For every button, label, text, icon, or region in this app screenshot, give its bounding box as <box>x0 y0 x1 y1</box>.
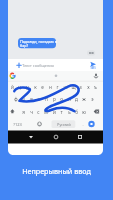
button[interactable]: ч <box>27 106 35 118</box>
button[interactable]: Attach <box>14 60 24 71</box>
staticText: и <box>53 109 56 115</box>
staticText: ц <box>18 84 21 90</box>
button[interactable]: Google search <box>8 71 18 81</box>
button[interactable]: ы <box>19 93 27 105</box>
staticText: з <box>79 84 82 90</box>
staticText: щ <box>71 84 76 90</box>
button[interactable]: б <box>72 106 80 118</box>
button[interactable]: ъ <box>91 81 99 93</box>
button[interactable]: щ <box>69 81 77 93</box>
staticText: м <box>44 109 48 115</box>
staticText: ъ <box>94 84 97 90</box>
staticText: Русский <box>57 122 71 127</box>
staticText: л <box>68 96 71 102</box>
button[interactable]: я <box>19 106 27 118</box>
button[interactable]: п <box>42 93 50 105</box>
button[interactable]: Enter <box>88 120 96 128</box>
staticText: х <box>87 84 90 90</box>
button[interactable]: д <box>72 93 80 105</box>
staticText: т <box>60 109 63 115</box>
button[interactable]: Home <box>48 131 64 144</box>
button[interactable]: х <box>84 81 92 93</box>
staticText: ы <box>21 96 25 102</box>
button[interactable]: н <box>46 81 54 93</box>
staticText: г <box>56 84 59 90</box>
staticText: е <box>41 84 44 90</box>
button[interactable]: ю <box>80 106 88 118</box>
button[interactable]: Shift <box>8 106 18 118</box>
button[interactable]: ?123 <box>10 118 24 130</box>
staticText: ю <box>82 109 86 115</box>
staticText: п <box>45 96 48 102</box>
staticText: д <box>75 96 78 102</box>
button[interactable]: Message bubble <box>18 38 56 48</box>
button[interactable]: ц <box>15 81 23 93</box>
button[interactable]: Emoji <box>34 118 45 130</box>
staticText: й <box>11 84 14 90</box>
button[interactable]: е <box>38 81 46 93</box>
staticText: у <box>26 84 29 90</box>
button[interactable]: Suggestion <box>50 71 62 81</box>
staticText: ь <box>68 109 71 115</box>
staticText: с <box>37 109 40 115</box>
staticText: р <box>53 96 56 102</box>
staticText: я <box>22 109 25 115</box>
button[interactable]: й <box>8 81 16 93</box>
staticText: ф <box>14 96 18 102</box>
button[interactable]: ь <box>65 106 73 118</box>
button[interactable]: Русский <box>52 120 76 128</box>
staticText: Непрерывный ввод <box>22 166 91 176</box>
staticText: а <box>37 96 40 102</box>
button[interactable]: в <box>27 93 35 105</box>
staticText: э <box>91 96 94 102</box>
button[interactable]: к <box>31 81 39 93</box>
staticText: ж <box>82 96 86 102</box>
staticText: к <box>34 84 37 90</box>
staticText: Текст сообщения <box>22 63 54 68</box>
button[interactable]: с <box>34 106 42 118</box>
staticText: . <box>82 122 84 127</box>
button[interactable]: и <box>50 106 58 118</box>
button[interactable]: Voice input <box>91 71 101 81</box>
button[interactable]: Send <box>87 59 99 71</box>
staticText: н <box>49 84 52 90</box>
button[interactable]: э <box>88 93 96 105</box>
staticText: ч <box>30 109 33 115</box>
button[interactable]: т <box>57 106 65 118</box>
staticText: Подожди, погадаю в бар? <box>20 39 57 48</box>
button[interactable]: Back <box>23 131 39 144</box>
button[interactable]: з <box>76 81 84 93</box>
button[interactable]: м <box>42 106 50 118</box>
staticText: ш <box>63 84 68 90</box>
staticText: о <box>60 96 63 102</box>
button[interactable]: л <box>65 93 73 105</box>
button[interactable]: а <box>34 93 42 105</box>
button[interactable]: ш <box>61 81 69 93</box>
staticText: SMS <box>90 66 96 70</box>
button[interactable]: Backspace <box>92 106 102 118</box>
staticText: в <box>30 96 33 102</box>
button[interactable]: о <box>57 93 65 105</box>
button[interactable]: ж <box>80 93 88 105</box>
button[interactable]: у <box>23 81 31 93</box>
button[interactable]: Recent apps <box>72 131 88 144</box>
staticText: ?123 <box>13 122 22 127</box>
button[interactable]: р <box>50 93 58 105</box>
staticText: б <box>75 109 78 115</box>
button[interactable]: ф <box>12 93 20 105</box>
button[interactable]: г <box>53 81 61 93</box>
